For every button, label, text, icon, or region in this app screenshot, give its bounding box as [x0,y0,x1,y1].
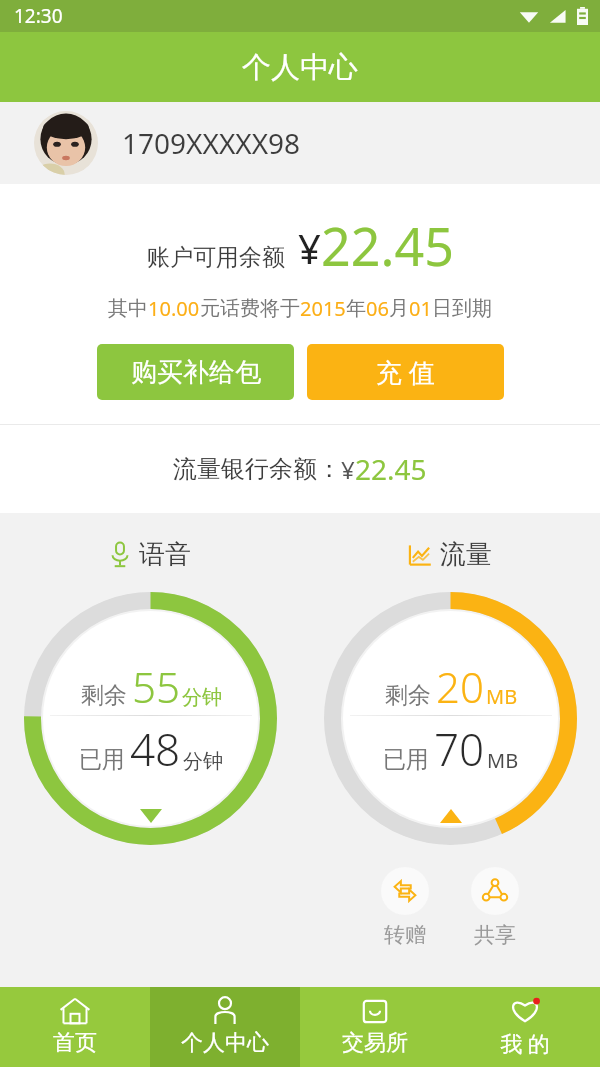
button[interactable]: 交易所 [300,987,450,1067]
staticText: 10.00 [148,295,200,322]
button[interactable]: 我 的 [450,987,600,1067]
staticText: 我 的 [500,1028,550,1058]
button[interactable]: 首页 [0,987,150,1067]
staticText: 其中 [108,296,148,321]
staticText: 账户可用余额 [147,243,285,272]
staticText: 55 [132,658,180,715]
staticText: MB [486,683,518,710]
button[interactable]: 剩余 [324,592,577,845]
staticText: 交易所 [342,1029,408,1057]
staticText: 剩余 [385,681,431,710]
staticText: 语音 [139,538,191,571]
staticText: 20 [436,658,484,715]
button[interactable]: 流量银行余额： [0,425,600,513]
staticText: 个人中心 [242,49,358,86]
button[interactable]: 购买补给包 [97,344,294,400]
staticText: 22.45 [355,450,427,488]
staticText: 充 值 [376,354,435,390]
button[interactable]: 个人中心 [150,987,300,1067]
button[interactable]: 充 值 [307,344,504,400]
staticText: 分钟 [183,749,223,774]
staticText: 70 [434,719,485,779]
staticText: 48 [130,719,181,779]
staticText: 个人中心 [181,1029,269,1057]
staticText: MB [487,747,519,774]
staticText: 12:30 [14,3,63,29]
button[interactable]: 剩余 [24,592,277,845]
staticText: 22.45 [321,210,454,281]
staticText: 月 [389,296,409,321]
button[interactable]: 共享 [471,867,519,948]
staticText: 购买补给包 [131,356,261,389]
staticText: 剩余 [81,681,127,710]
staticText: 06 [366,295,389,322]
staticText: 日到期 [432,296,492,321]
staticText: ¥ [341,453,355,486]
staticText: 2015 [300,295,346,322]
staticText: 年 [346,296,366,321]
staticText: 共享 [474,922,516,948]
button[interactable]: 1709XXXXX98 [0,102,600,184]
other: 共享 [482,878,508,904]
staticText: 已用 [79,745,125,774]
staticText: 首页 [53,1029,97,1057]
staticText: 流量 [440,538,492,571]
staticText: 1709XXXXX98 [122,124,301,162]
staticText: 元话费将于 [200,296,300,321]
staticText: ¥ [298,221,321,275]
staticText: 转赠 [384,922,426,948]
staticText: 已用 [383,745,429,774]
other: 转赠 [392,878,418,904]
staticText: 01 [409,295,432,322]
staticText: 流量银行余额： [173,454,341,484]
button[interactable]: 转赠 [381,867,429,948]
staticText: 分钟 [182,685,222,710]
